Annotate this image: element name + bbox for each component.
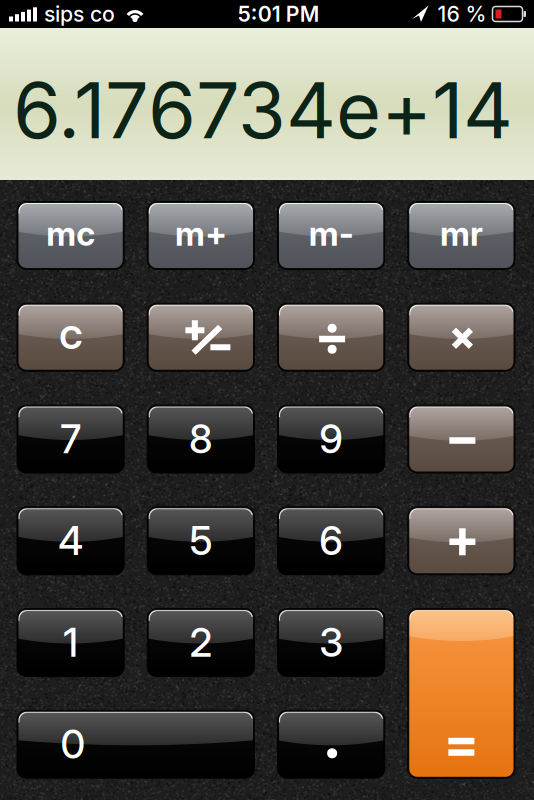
button[interactable]: 2 — [148, 609, 254, 676]
button[interactable]: Multiply — [408, 304, 514, 371]
button[interactable]: 0 — [17, 711, 254, 778]
staticText: 4 — [58, 517, 83, 565]
button[interactable]: 5 — [148, 507, 254, 574]
button[interactable]: Decimal point — [278, 711, 384, 778]
button[interactable]: Equals — [408, 609, 514, 778]
staticText: 5 — [189, 517, 212, 565]
button[interactable]: 3 — [278, 609, 384, 676]
staticText: C — [59, 318, 82, 357]
button[interactable]: m+ — [148, 202, 254, 269]
button[interactable]: 7 — [17, 405, 124, 472]
staticText: 1 — [63, 619, 78, 666]
staticText: 16 % — [437, 1, 486, 27]
staticText: m- — [309, 213, 354, 254]
staticText: 5:01 PM — [238, 1, 320, 27]
staticText: 0 — [60, 720, 85, 768]
staticText: 7 — [60, 415, 81, 463]
staticText: mr — [440, 213, 483, 254]
staticText: mc — [46, 213, 95, 254]
button[interactable]: mr — [408, 202, 514, 269]
button[interactable]: 9 — [278, 405, 384, 472]
button[interactable]: Minus — [408, 405, 514, 472]
staticText: 2 — [189, 619, 212, 666]
staticText: sips co — [44, 1, 115, 27]
staticText: 3 — [319, 619, 343, 666]
button[interactable]: Divide — [278, 304, 384, 371]
staticText: 9 — [319, 415, 343, 463]
button[interactable]: mc — [17, 202, 124, 269]
button[interactable]: 1 — [17, 609, 124, 676]
button[interactable]: m- — [278, 202, 384, 269]
staticText: 8 — [189, 415, 213, 463]
button[interactable]: Plus — [408, 507, 514, 574]
button[interactable]: Clear — [17, 304, 124, 371]
staticText: 6.176734e+14 — [13, 63, 513, 157]
staticText: m+ — [175, 213, 227, 254]
button[interactable]: 8 — [148, 405, 254, 472]
button[interactable]: 4 — [17, 507, 124, 574]
button[interactable]: Plus minus — [148, 304, 254, 371]
staticText: 6 — [319, 517, 343, 565]
button[interactable]: 6 — [278, 507, 384, 574]
